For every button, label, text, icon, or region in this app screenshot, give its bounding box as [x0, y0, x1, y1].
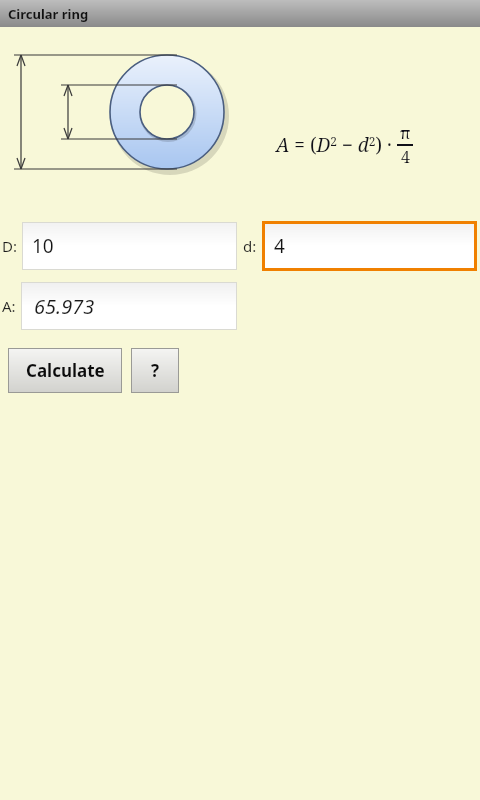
button[interactable]: 65.973 [22, 283, 236, 329]
staticText: D: [2, 236, 17, 256]
staticText: A: [2, 296, 16, 316]
button[interactable]: Calculate [9, 349, 121, 392]
button[interactable]: Help [132, 349, 178, 392]
staticText: 4 [274, 233, 285, 259]
staticText: 65.973 [34, 293, 95, 320]
staticText: Calculate [26, 359, 105, 382]
staticText: ? [151, 359, 160, 382]
button[interactable]: 10 [23, 223, 236, 269]
staticText: 4 [401, 146, 410, 168]
staticText: 10 [32, 233, 54, 259]
staticText: d: [243, 236, 257, 256]
button[interactable]: 4 [265, 224, 474, 268]
staticText: A = (D2 − d2) · [276, 132, 397, 158]
staticText: Circular ring [8, 5, 89, 23]
staticText: π [400, 122, 411, 144]
